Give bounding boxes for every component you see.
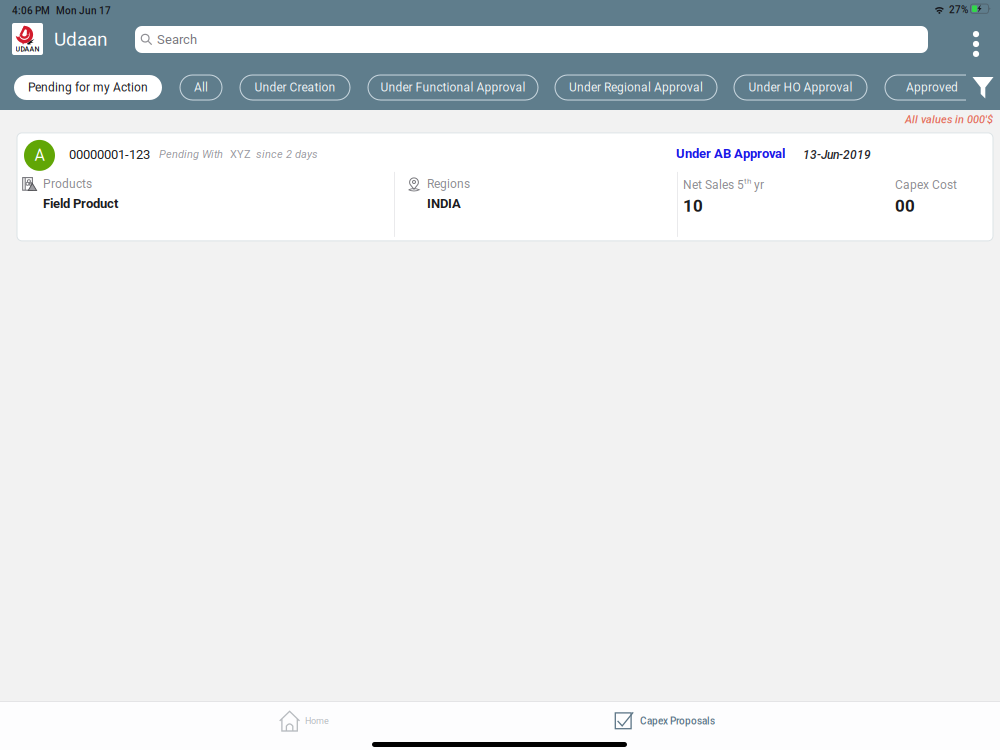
staticText: A: [34, 146, 44, 165]
staticText: Udaan: [54, 28, 107, 50]
staticText: 00: [895, 196, 915, 216]
staticText: Search: [157, 32, 197, 47]
staticText: yr: [751, 178, 764, 192]
staticText: since 2 days: [256, 148, 318, 161]
staticText: Regions: [427, 177, 470, 191]
staticText: 27%: [949, 4, 968, 16]
button[interactable]: Home: [276, 706, 332, 736]
staticText: Home: [305, 716, 329, 726]
button[interactable]: All: [180, 75, 222, 100]
staticText: 10: [683, 196, 703, 216]
button[interactable]: Filter: [966, 70, 1000, 105]
button[interactable]: Approved: [885, 75, 979, 100]
button[interactable]: A: [17, 133, 993, 241]
staticText: Field Product: [43, 196, 118, 211]
staticText: INDIA: [427, 196, 461, 211]
staticText: Approved: [906, 80, 958, 95]
button[interactable]: Under Functional Approval: [368, 75, 538, 100]
staticText: 00000001-123: [69, 147, 150, 162]
staticText: Net Sales 5: [683, 178, 744, 192]
staticText: Under Creation: [254, 80, 335, 95]
button[interactable]: Capex Proposals: [612, 706, 717, 736]
staticText: XYZ: [230, 148, 251, 161]
button[interactable]: Pending for my Action: [14, 75, 162, 100]
staticText: Products: [43, 177, 92, 191]
staticText: Pending With: [159, 148, 223, 161]
staticText: 13-Jun-2019: [803, 148, 871, 162]
staticText: Under Regional Approval: [569, 80, 703, 95]
staticText: All: [194, 80, 208, 95]
staticText: Under Functional Approval: [380, 80, 525, 95]
staticText: Under AB Approval: [676, 146, 785, 161]
staticText: Pending for my Action: [28, 80, 148, 95]
button[interactable]: Search: [135, 26, 928, 53]
staticText: Capex Proposals: [640, 715, 715, 727]
staticText: All values in 000'$: [905, 113, 993, 126]
staticText: Under HO Approval: [748, 80, 852, 95]
button[interactable]: Under Regional Approval: [555, 75, 717, 100]
button[interactable]: More options: [958, 22, 994, 66]
staticText: 4:06 PM Mon Jun 17: [12, 5, 111, 17]
staticText: UDAAN: [15, 45, 39, 53]
staticText: th: [744, 176, 751, 186]
button[interactable]: Under HO Approval: [734, 75, 867, 100]
staticText: Capex Cost: [895, 178, 957, 192]
button[interactable]: Under Creation: [240, 75, 350, 100]
